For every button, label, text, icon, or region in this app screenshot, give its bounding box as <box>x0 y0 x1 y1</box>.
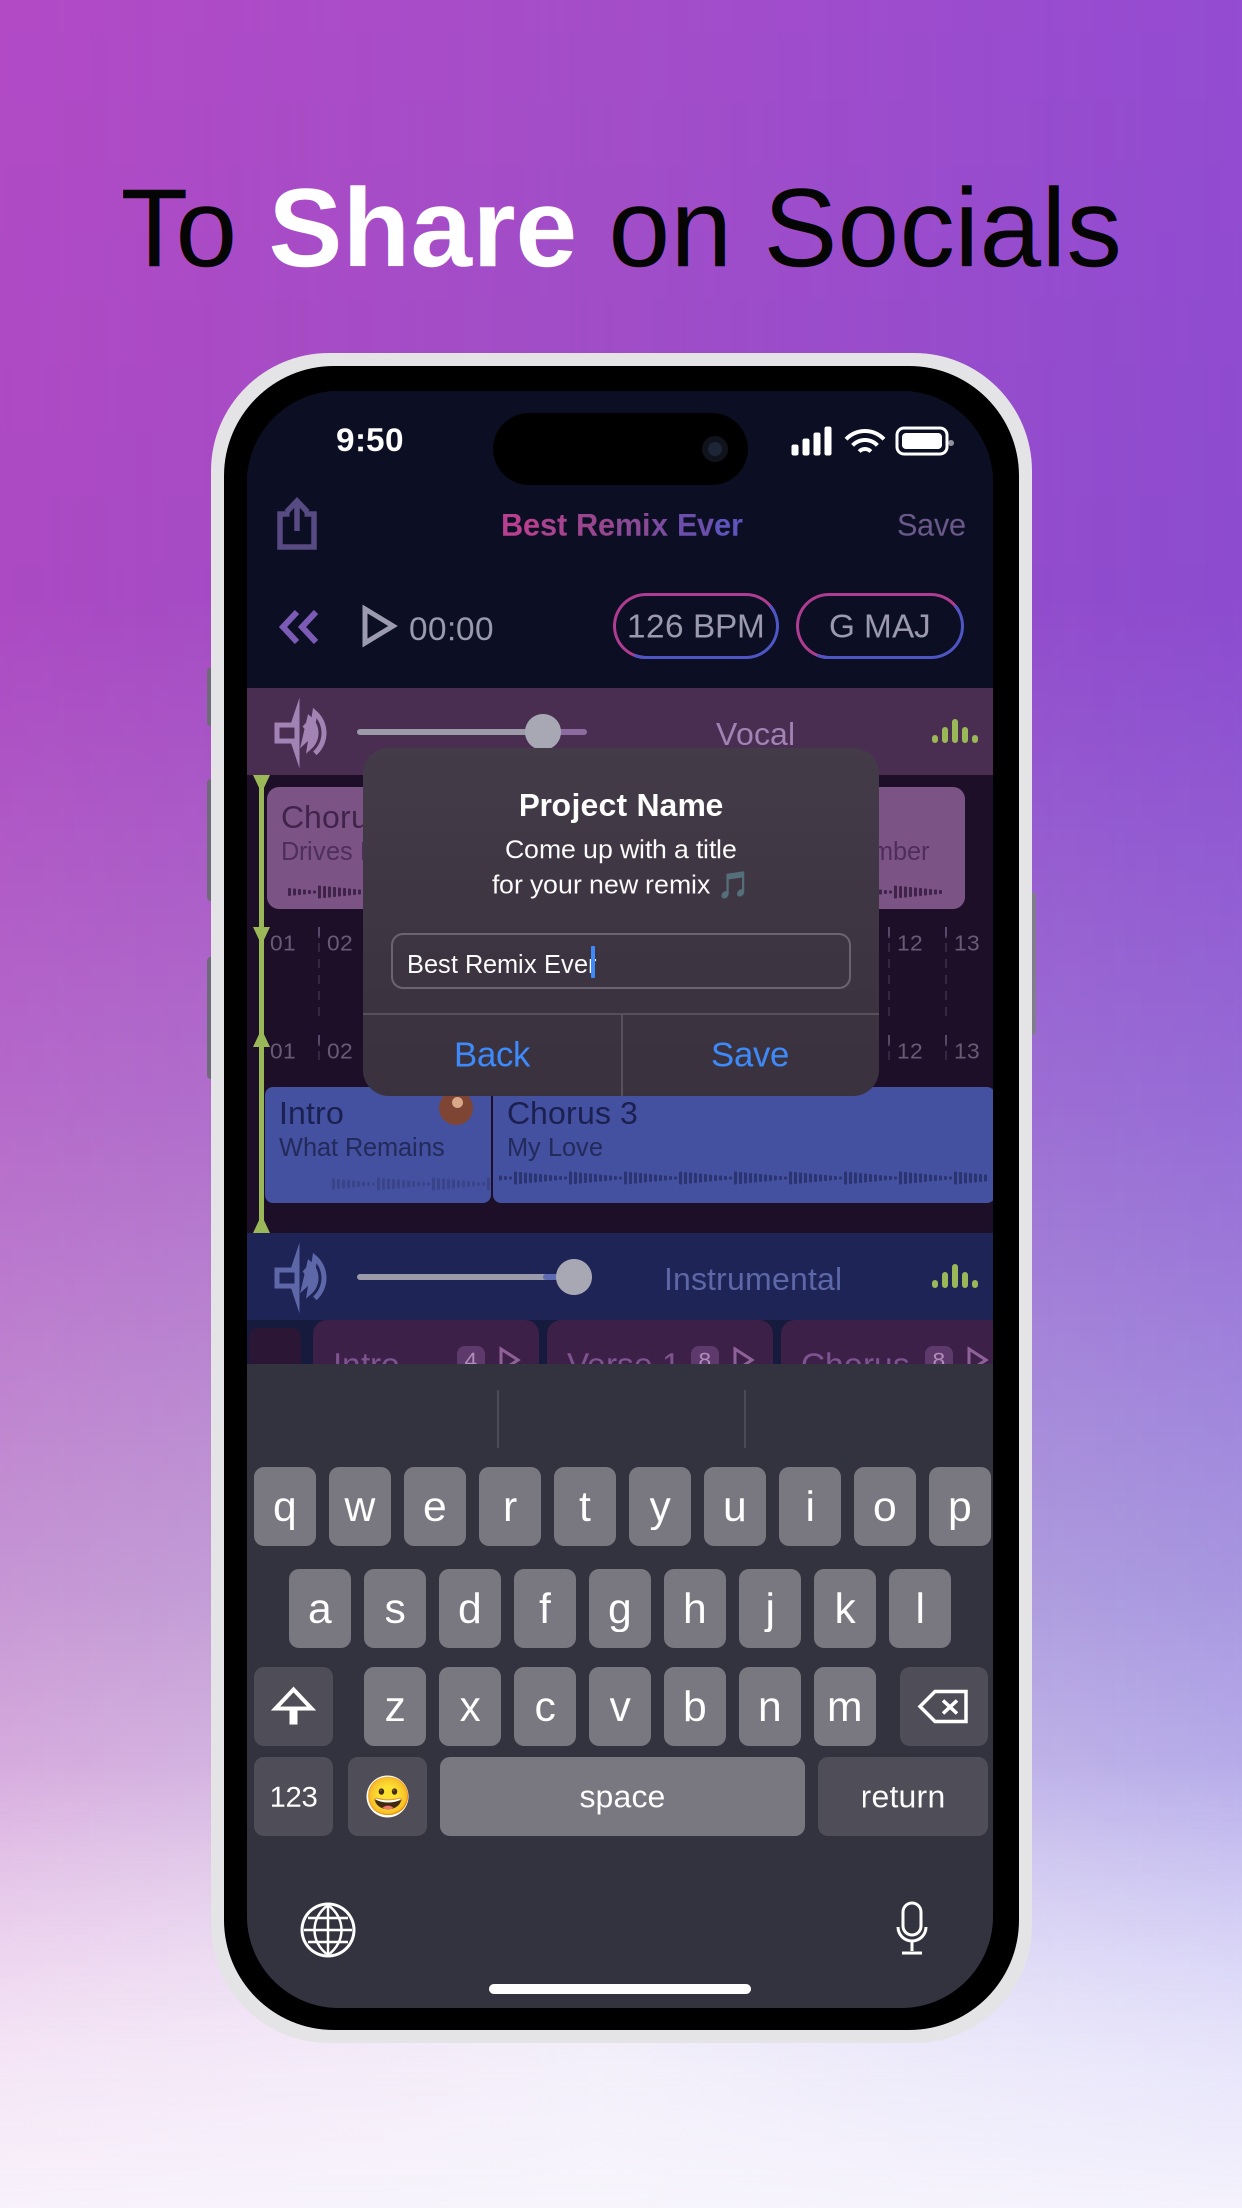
staticText: 123 <box>269 1780 317 1813</box>
staticText: l <box>915 1585 924 1632</box>
staticText: 03 <box>384 930 410 955</box>
button[interactable]: i <box>779 1467 841 1546</box>
staticText: 11 <box>840 930 864 955</box>
button[interactable]: g <box>589 1569 651 1648</box>
staticText: 12 <box>897 930 923 955</box>
staticText: Intro <box>333 1346 400 1383</box>
staticText: 00:00 <box>409 610 494 647</box>
staticText: b <box>683 1683 707 1730</box>
staticText: Verse 1 <box>567 1346 681 1383</box>
button[interactable]: Shift <box>254 1667 333 1746</box>
staticText: Ev <box>677 508 714 542</box>
staticText: Save <box>711 1035 789 1074</box>
staticText: Come up with a title <box>505 834 737 864</box>
button[interactable]: return <box>818 1757 988 1836</box>
staticText: c <box>534 1683 555 1730</box>
button[interactable]: w <box>329 1467 391 1546</box>
button[interactable]: Rewind <box>278 607 320 647</box>
staticText: 05 <box>498 1038 524 1063</box>
staticText: g <box>608 1585 632 1632</box>
button[interactable]: r <box>479 1467 541 1546</box>
staticText: h <box>683 1585 707 1632</box>
staticText: 05 <box>498 930 524 955</box>
button[interactable]: G MAJ <box>796 593 964 659</box>
button[interactable]: x <box>439 1667 501 1746</box>
button[interactable]: q <box>254 1467 316 1546</box>
button[interactable]: e <box>404 1467 466 1546</box>
button[interactable]: f <box>514 1569 576 1648</box>
staticText: 8 <box>932 1347 945 1373</box>
button[interactable]: y <box>629 1467 691 1546</box>
button[interactable]: j <box>739 1569 801 1648</box>
staticText: 13 <box>954 1038 980 1063</box>
button[interactable]: k <box>814 1569 876 1648</box>
staticText: 8 <box>698 1347 711 1373</box>
button[interactable]: a <box>289 1569 351 1648</box>
button[interactable]: p <box>929 1467 991 1546</box>
staticText: 12 <box>897 1038 923 1063</box>
button[interactable]: 123 <box>254 1757 333 1836</box>
staticText: x <box>459 1683 480 1730</box>
button[interactable]: Emoji <box>348 1757 427 1836</box>
button[interactable]: Save <box>621 1013 879 1096</box>
staticText: G MAJ <box>829 607 931 645</box>
staticText: x <box>651 508 677 542</box>
staticText: z <box>384 1683 405 1730</box>
staticText: Instrumental <box>664 1261 842 1297</box>
button[interactable]: 126 BPM <box>613 593 779 659</box>
staticText: 😀 <box>364 1775 410 1818</box>
staticText: Chorus 3 <box>507 1095 638 1131</box>
staticText: d <box>458 1585 482 1632</box>
button[interactable]: d <box>439 1569 501 1648</box>
staticText: er <box>714 508 743 542</box>
button[interactable]: b <box>664 1667 726 1746</box>
staticText: 06 <box>555 930 581 955</box>
button[interactable]: n <box>739 1667 801 1746</box>
button[interactable]: Save <box>883 500 980 550</box>
staticText: space <box>579 1779 665 1814</box>
staticText: o <box>873 1483 897 1530</box>
button[interactable]: l <box>889 1569 951 1648</box>
staticText: v <box>609 1683 630 1730</box>
button[interactable]: Back <box>363 1013 621 1096</box>
staticText: Chorus 1 <box>281 799 412 835</box>
button[interactable]: Delete <box>900 1667 988 1746</box>
staticText: 02 <box>327 930 353 955</box>
button[interactable]: h <box>664 1569 726 1648</box>
staticText: u <box>723 1483 747 1530</box>
staticText: t <box>579 1483 591 1530</box>
button[interactable]: Play <box>360 605 398 647</box>
staticText: y <box>649 1483 670 1530</box>
button[interactable]: t <box>554 1467 616 1546</box>
button[interactable]: u <box>704 1467 766 1546</box>
staticText: Project Name <box>518 787 723 823</box>
staticText: k <box>834 1585 855 1632</box>
staticText: Drives Me Wild <box>281 837 452 865</box>
staticText: s <box>384 1585 405 1632</box>
staticText: 9:50 <box>336 421 404 458</box>
button[interactable]: c <box>514 1667 576 1746</box>
button[interactable]: o <box>854 1467 916 1546</box>
staticText: 07 <box>612 1038 638 1063</box>
staticText: for your new remix 🎵 <box>492 869 750 900</box>
staticText: Save <box>897 508 966 542</box>
staticText: e <box>423 1483 447 1530</box>
button[interactable]: Switch keyboard <box>300 1902 356 1958</box>
button[interactable]: Dictate <box>891 1901 933 1959</box>
button[interactable]: z <box>364 1667 426 1746</box>
button[interactable]: v <box>589 1667 651 1746</box>
staticText: Back <box>454 1035 530 1074</box>
staticText: st <box>540 508 576 542</box>
staticText: j <box>765 1585 774 1632</box>
staticText: i <box>805 1483 814 1530</box>
button[interactable]: s <box>364 1569 426 1648</box>
staticText: 4 <box>464 1347 477 1373</box>
button[interactable]: space <box>440 1757 805 1836</box>
staticText: 10 <box>783 930 809 955</box>
staticText: 13 <box>954 930 980 955</box>
button[interactable]: Share <box>271 492 323 556</box>
staticText: r <box>503 1483 517 1530</box>
staticText: 08 <box>669 930 695 955</box>
button[interactable]: m <box>814 1667 876 1746</box>
